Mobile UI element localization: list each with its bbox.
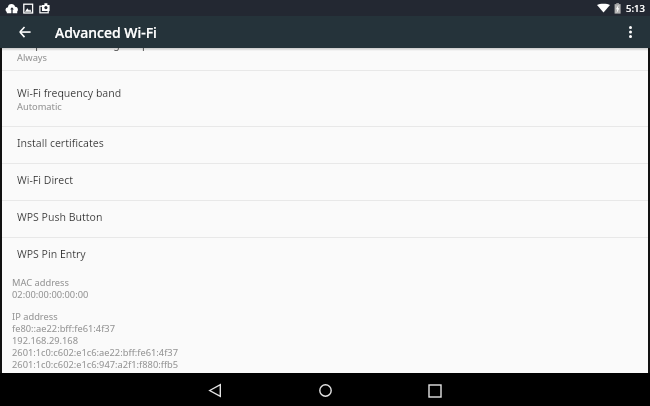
button[interactable]: Recent apps — [404, 375, 466, 406]
button[interactable]: Wi-Fi frequency band — [0, 71, 650, 126]
staticText: IP address fe80::ae22:bff:fe61:4f37 192.… — [12, 311, 650, 371]
staticText: Wi-Fi Direct — [17, 173, 73, 187]
staticText: Advanced Wi-Fi — [55, 23, 157, 42]
button[interactable]: WPS Pin Entry — [0, 238, 650, 274]
staticText: MAC address 02:00:00:00:00:00 — [12, 277, 650, 301]
staticText: Automatic — [17, 100, 62, 113]
staticText: WPS Pin Entry — [17, 247, 86, 261]
button[interactable]: Keep Wi-Fi on during sleep — [0, 48, 650, 70]
staticText: Wi-Fi frequency band — [17, 86, 122, 100]
staticText: 5:13 — [626, 2, 645, 15]
staticText: Install certificates — [17, 136, 104, 150]
button[interactable]: Home — [294, 375, 356, 406]
button[interactable]: WPS Push Button — [0, 201, 650, 237]
staticText: Always — [17, 51, 48, 64]
button[interactable]: Wi-Fi Direct — [0, 164, 650, 200]
button[interactable]: Back — [184, 375, 246, 406]
button[interactable]: Install certificates — [0, 127, 650, 163]
staticText: Keep Wi-Fi on during sleep — [17, 48, 149, 51]
button[interactable]: Navigate up — [13, 20, 37, 44]
button[interactable]: More options — [618, 20, 642, 44]
staticText: WPS Push Button — [17, 210, 103, 224]
